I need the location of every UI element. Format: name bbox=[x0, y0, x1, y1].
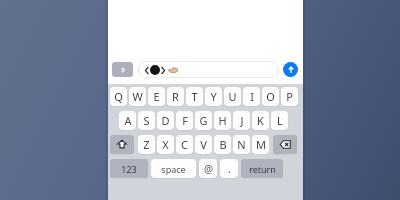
staticText: H bbox=[218, 113, 227, 128]
button[interactable]: A bbox=[119, 111, 136, 130]
staticText: M bbox=[256, 137, 266, 152]
button[interactable]: V bbox=[195, 135, 212, 154]
staticText: L bbox=[277, 113, 283, 128]
staticText: F bbox=[182, 113, 188, 128]
button[interactable]: J bbox=[233, 111, 250, 130]
button[interactable]: B bbox=[214, 135, 231, 154]
staticText: N bbox=[237, 137, 246, 152]
staticText: space bbox=[161, 163, 186, 175]
button[interactable]: T bbox=[186, 87, 203, 106]
staticText: C bbox=[181, 137, 188, 152]
button[interactable]: U bbox=[224, 87, 241, 106]
button[interactable]: O bbox=[262, 87, 279, 106]
button[interactable]: E bbox=[148, 87, 165, 106]
button[interactable]: D bbox=[157, 111, 174, 130]
staticText: G bbox=[199, 113, 208, 128]
button[interactable]: return bbox=[241, 159, 283, 178]
button[interactable]: Shift bbox=[110, 135, 134, 154]
staticText: X bbox=[162, 137, 169, 152]
button[interactable]: @ bbox=[199, 159, 217, 178]
staticText: . bbox=[228, 162, 231, 176]
button[interactable]: X bbox=[157, 135, 174, 154]
staticText: E bbox=[153, 89, 160, 104]
staticText: P bbox=[286, 89, 293, 104]
button[interactable]: C bbox=[176, 135, 193, 154]
staticText: O bbox=[266, 89, 275, 104]
staticText: K bbox=[257, 113, 264, 128]
staticText: Y bbox=[210, 89, 217, 104]
button[interactable]: Y bbox=[205, 87, 222, 106]
staticText: S bbox=[143, 113, 150, 128]
button[interactable]: G bbox=[195, 111, 212, 130]
staticText: V bbox=[200, 137, 207, 152]
button[interactable]: Backspace bbox=[273, 135, 297, 154]
staticText: D bbox=[161, 113, 170, 128]
staticText: U bbox=[228, 89, 237, 104]
staticText: B bbox=[219, 137, 227, 152]
staticText: W bbox=[132, 89, 143, 104]
button[interactable]: 123 bbox=[110, 159, 148, 178]
staticText: Z bbox=[143, 137, 150, 152]
staticText: J bbox=[240, 113, 244, 128]
button[interactable]: L bbox=[271, 111, 288, 130]
staticText: @ bbox=[204, 162, 213, 176]
button[interactable]: Show apps bbox=[112, 62, 133, 77]
button[interactable]: space bbox=[151, 159, 196, 178]
button[interactable]: I bbox=[243, 87, 260, 106]
staticText: A bbox=[124, 113, 132, 128]
staticText: R bbox=[172, 89, 179, 104]
staticText: T bbox=[191, 89, 198, 104]
button[interactable]: K bbox=[252, 111, 269, 130]
button[interactable]: Q bbox=[110, 87, 127, 106]
button[interactable]: S bbox=[138, 111, 155, 130]
button[interactable]: H bbox=[214, 111, 231, 130]
button[interactable]: M bbox=[252, 135, 269, 154]
button[interactable]: W bbox=[129, 87, 146, 106]
button[interactable]: N bbox=[233, 135, 250, 154]
button[interactable] bbox=[138, 61, 279, 78]
button[interactable]: F bbox=[176, 111, 193, 130]
button[interactable]: . bbox=[220, 159, 238, 178]
staticText: return bbox=[249, 163, 276, 175]
button[interactable]: Send bbox=[283, 62, 298, 77]
staticText: 123 bbox=[121, 163, 137, 175]
button[interactable]: P bbox=[281, 87, 298, 106]
staticText: Q bbox=[114, 89, 123, 104]
staticText: I bbox=[250, 89, 254, 104]
button[interactable]: Z bbox=[138, 135, 155, 154]
button[interactable]: R bbox=[167, 87, 184, 106]
